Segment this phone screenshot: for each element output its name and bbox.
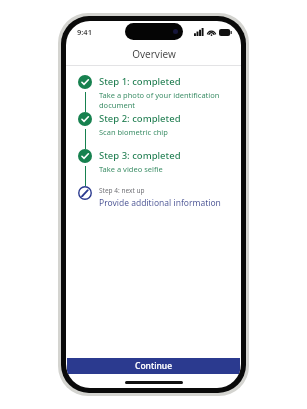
other: Step completed [78,75,92,89]
staticText: Overview [132,47,176,61]
staticText: 9:41 [77,27,92,37]
other: Step completed [78,149,92,163]
staticText: Step 1: completed [99,75,181,88]
button[interactable]: Step completed [78,149,231,186]
staticText: Take a photo of your identification docu… [99,90,231,110]
staticText: Take a video selfie [99,164,163,174]
staticText: Step 2: completed [99,112,181,125]
other: Next step, edit [78,186,92,200]
staticText: Scan biometric chip [99,127,168,137]
button[interactable]: Continue [67,358,240,374]
staticText: Step 4: next up [99,186,145,195]
button[interactable]: Step completed [78,75,231,112]
staticText: Step 3: completed [99,149,181,162]
button[interactable]: Next step, edit [78,186,231,209]
other: Step completed [78,112,92,126]
staticText: Continue [135,360,173,372]
button[interactable]: Step completed [78,112,231,149]
staticText: Provide additional information [99,197,221,209]
